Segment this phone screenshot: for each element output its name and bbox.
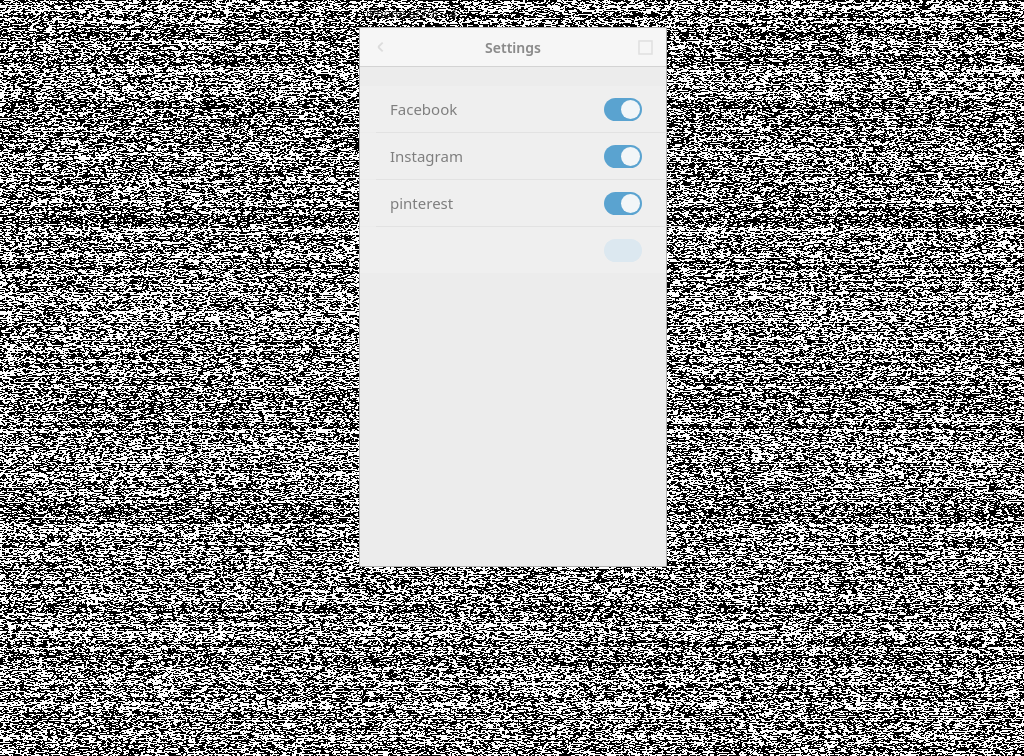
button[interactable]: Facebook xyxy=(360,86,666,132)
button[interactable]: pinterest xyxy=(360,180,666,226)
staticText: Facebook xyxy=(390,99,458,119)
button[interactable]: Toggle on xyxy=(604,239,642,262)
staticText: pinterest xyxy=(390,193,454,213)
button[interactable]: More options xyxy=(628,30,662,64)
staticText: Instagram xyxy=(390,146,463,166)
button[interactable]: Toggle on xyxy=(604,192,642,215)
button[interactable]: Toggle on xyxy=(360,227,666,273)
button[interactable]: Toggle on xyxy=(604,98,642,121)
button[interactable]: Back xyxy=(364,30,398,64)
button[interactable]: Toggle on xyxy=(604,145,642,168)
button[interactable]: Instagram xyxy=(360,133,666,179)
staticText: iPhone 6/7/8 – 4 xyxy=(366,5,457,21)
staticText: Settings xyxy=(485,38,541,57)
